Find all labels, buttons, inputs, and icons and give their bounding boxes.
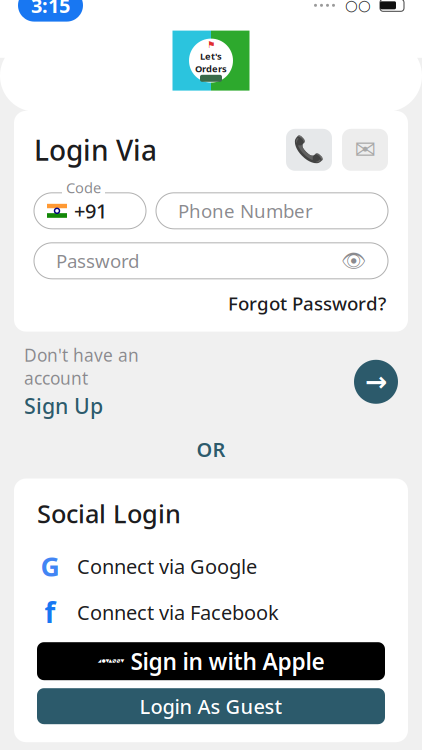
- staticText: 3:15: [31, 0, 70, 19]
- staticText: Sign in with Apple: [130, 646, 324, 676]
- button[interactable]: Don't have an account: [24, 344, 189, 420]
- staticText: Password: [56, 248, 139, 273]
- button[interactable]: Login with email: [342, 129, 388, 171]
- button[interactable]: f: [14, 596, 408, 628]
- staticText: ○○: [345, 0, 371, 14]
- staticText: Code: [66, 178, 101, 197]
- staticText: 📞: [293, 135, 325, 164]
- staticText: Connect via Google: [77, 553, 257, 579]
- staticText: +91: [74, 197, 107, 224]
- staticText: Login As Guest: [139, 693, 282, 719]
- button[interactable]: Login As Guest: [14, 688, 408, 724]
- staticText: →: [365, 367, 387, 397]
- button[interactable]: Forgot Password?: [228, 291, 386, 316]
- staticText: Let's: [200, 50, 222, 62]
- staticText: Social Login: [37, 496, 181, 530]
- button[interactable]: : [14, 642, 408, 680]
- staticText: f: [44, 594, 55, 631]
- staticText: Login Via: [34, 131, 157, 168]
- button[interactable]: Login with phone: [286, 129, 332, 171]
- button[interactable]: Continue: [354, 360, 398, 404]
- staticText: G: [40, 548, 59, 584]
- staticText: Sign Up: [24, 392, 103, 420]
- button[interactable]: Show password: [341, 249, 366, 272]
- staticText: Orders: [195, 62, 227, 75]
- staticText: Phone Number: [178, 198, 313, 223]
- staticText: ✉: [354, 135, 375, 164]
- button[interactable]: G: [14, 550, 408, 582]
- staticText: Don't have an account: [24, 344, 139, 390]
- staticText: ⚑: [207, 39, 215, 50]
- staticText: Connect via Facebook: [77, 599, 279, 625]
- staticText: Forgot Password?: [228, 291, 386, 316]
- button[interactable]: Country code: [34, 193, 146, 229]
- staticText: 👁: [341, 249, 366, 272]
- staticText: OR: [196, 436, 225, 463]
- staticText: : [97, 648, 124, 674]
